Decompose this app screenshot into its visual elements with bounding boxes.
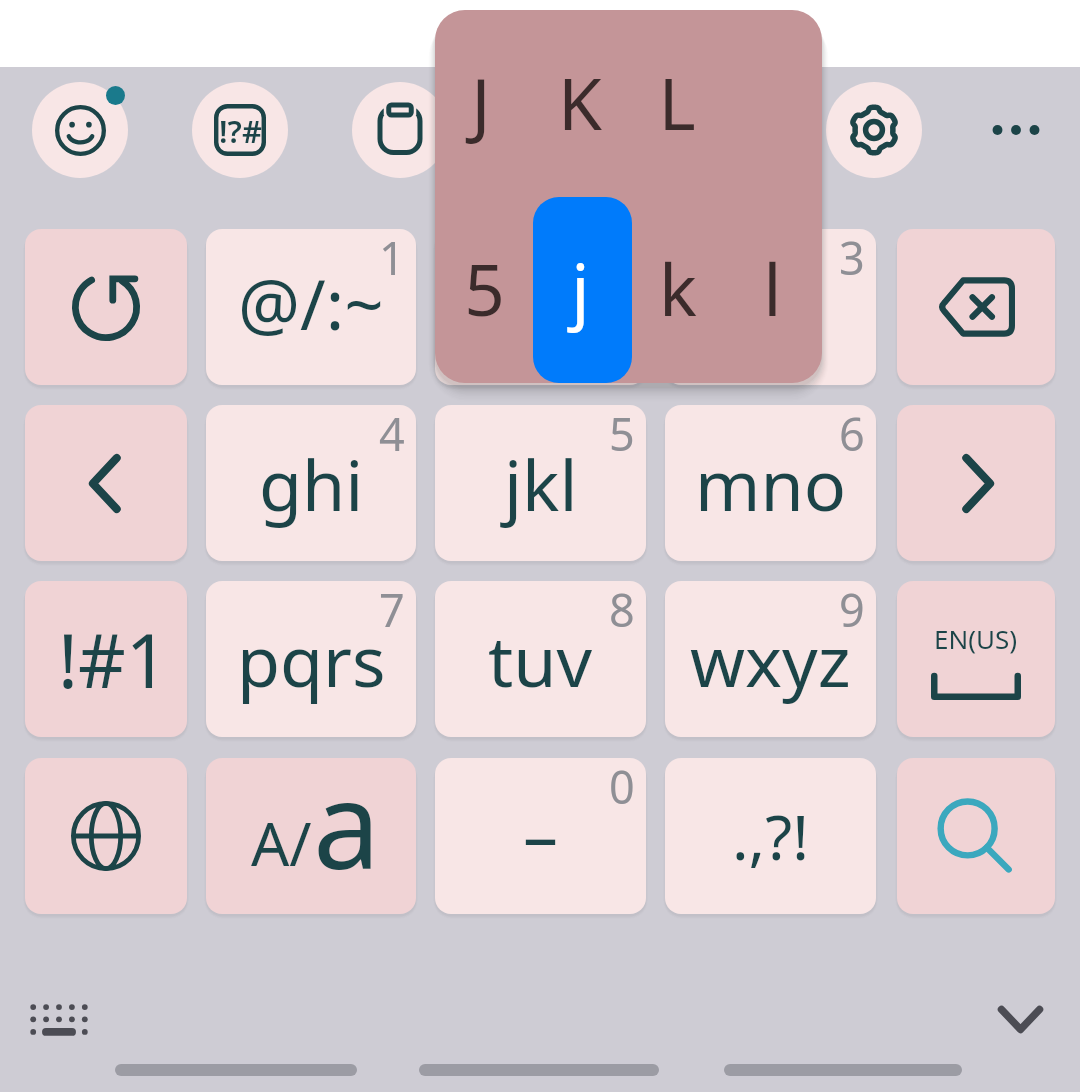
staticText: l xyxy=(763,240,782,337)
staticText: 5 xyxy=(464,240,505,337)
button[interactable]: @/:~ xyxy=(206,229,416,385)
staticText: j xyxy=(571,240,590,337)
button[interactable]: – xyxy=(435,758,646,914)
staticText: 7 xyxy=(379,581,405,640)
button[interactable]: mno xyxy=(665,405,876,561)
button[interactable]: Emoji xyxy=(32,82,128,178)
staticText: @/:~ xyxy=(238,256,384,350)
staticText: J xyxy=(471,54,491,151)
staticText: 9 xyxy=(839,581,865,640)
button[interactable]: ghi xyxy=(206,405,416,561)
button[interactable]: Change keyboard language xyxy=(25,758,187,914)
staticText: def xyxy=(707,260,814,355)
staticText: pqrs xyxy=(237,612,386,707)
button[interactable]: Backspace xyxy=(897,229,1055,385)
staticText: !#1 xyxy=(58,609,169,710)
staticText: a xyxy=(313,758,381,897)
staticText: mno xyxy=(695,436,847,531)
button[interactable]: Switch keyboard layout xyxy=(9,979,109,1059)
button[interactable]: J xyxy=(435,10,822,383)
button[interactable]: def xyxy=(665,229,876,385)
button[interactable]: Move cursor right xyxy=(897,405,1055,561)
staticText: abc xyxy=(483,260,599,355)
button[interactable]: K xyxy=(531,10,629,194)
button[interactable]: J xyxy=(435,10,530,194)
staticText: K xyxy=(558,54,602,151)
button[interactable]: !#1 xyxy=(25,581,187,737)
button[interactable]: l xyxy=(723,196,821,380)
staticText: .,?! xyxy=(732,794,809,878)
staticText: k xyxy=(659,240,697,337)
staticText: 4 xyxy=(379,405,405,464)
staticText: – xyxy=(523,786,558,881)
button[interactable]: wxyz xyxy=(665,581,876,737)
staticText: 3 xyxy=(839,229,865,288)
staticText: tuv xyxy=(488,612,593,707)
button[interactable]: Move cursor left xyxy=(25,405,187,561)
staticText: 0 xyxy=(609,758,635,817)
button[interactable]: abc xyxy=(435,229,646,385)
staticText: 5 xyxy=(609,405,635,464)
staticText: 6 xyxy=(839,405,865,464)
button[interactable]: More options xyxy=(968,82,1064,178)
button[interactable]: L xyxy=(628,10,726,194)
button[interactable]: Space xyxy=(897,581,1055,737)
button[interactable]: jkl xyxy=(435,405,646,561)
button[interactable]: Clipboard xyxy=(352,82,448,178)
staticText: L xyxy=(658,54,696,151)
button[interactable]: k xyxy=(629,196,727,380)
button[interactable]: Search xyxy=(897,758,1055,914)
staticText: !?# xyxy=(219,110,262,152)
button[interactable]: Symbols xyxy=(192,82,288,178)
button[interactable]: pqrs xyxy=(206,581,416,737)
staticText: 1 xyxy=(379,229,405,288)
staticText: wxyz xyxy=(690,612,851,707)
staticText: ghi xyxy=(259,436,364,531)
button[interactable]: .,?! xyxy=(665,758,876,914)
staticText: jkl xyxy=(504,436,578,531)
button[interactable]: tuv xyxy=(435,581,646,737)
staticText: A/ xyxy=(251,802,312,884)
button[interactable]: Change case xyxy=(206,758,416,914)
button[interactable]: Undo xyxy=(25,229,187,385)
button[interactable]: j xyxy=(531,196,629,380)
staticText: 2 xyxy=(609,229,635,288)
staticText: 8 xyxy=(609,581,635,640)
button[interactable]: Hide keyboard xyxy=(970,979,1070,1059)
button[interactable]: 5 xyxy=(435,196,533,380)
staticText: EN(US) xyxy=(934,621,1018,656)
button[interactable]: Settings xyxy=(826,82,922,178)
